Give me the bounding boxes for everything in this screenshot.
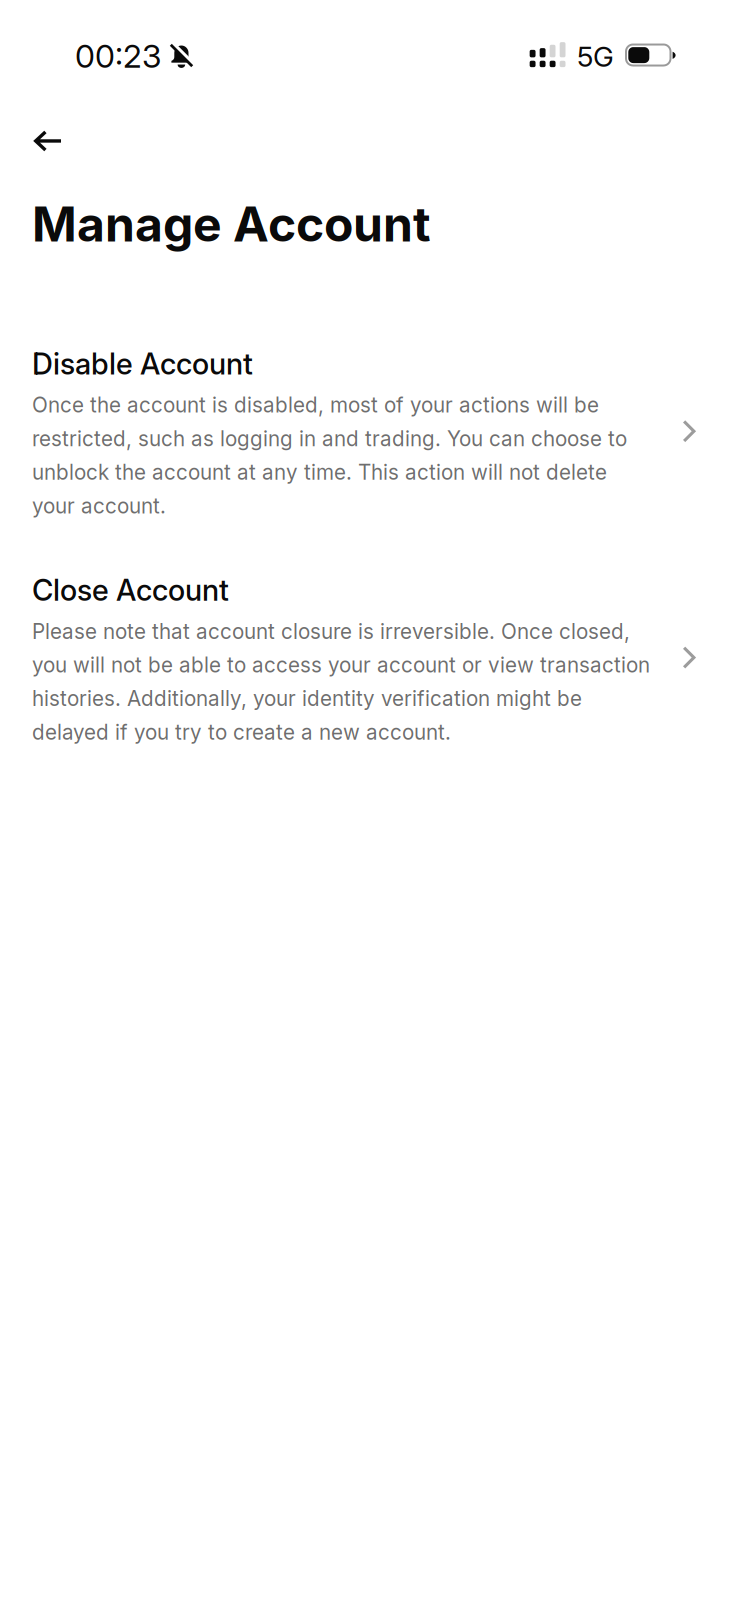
staticText: Once the account is disabled, most of yo… <box>32 393 627 518</box>
button[interactable]: Close Account <box>0 572 738 745</box>
button[interactable]: Disable Account <box>0 346 738 518</box>
button[interactable]: Back <box>0 113 738 169</box>
staticText: 00:23 <box>75 37 161 75</box>
staticText: 5G <box>577 40 614 73</box>
staticText: Disable Account <box>32 346 253 382</box>
staticText: Please note that account closure is irre… <box>32 619 650 745</box>
staticText: Manage Account <box>32 195 431 253</box>
staticText: Close Account <box>32 572 229 608</box>
